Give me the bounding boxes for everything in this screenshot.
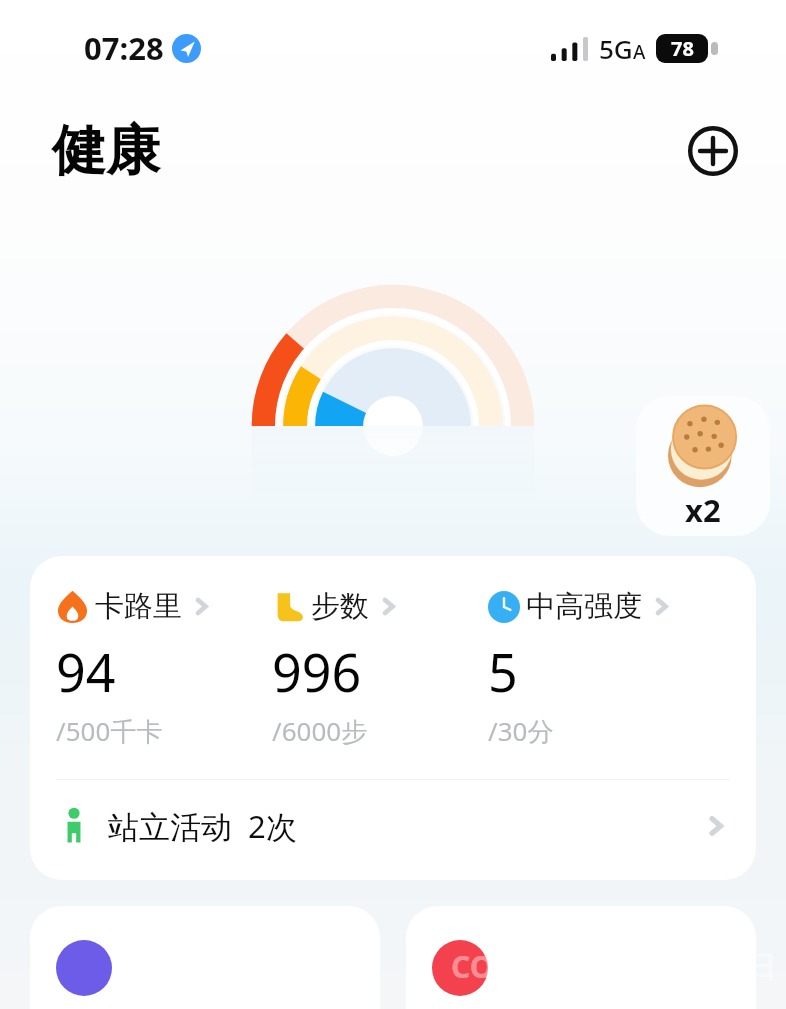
button[interactable]: 中高强度 xyxy=(488,588,730,749)
staticText: A xyxy=(633,39,646,65)
button[interactable]: 步数 xyxy=(272,588,488,749)
staticText: /500千卡 xyxy=(56,713,163,749)
staticText: 卡路里 xyxy=(95,588,182,625)
button[interactable] xyxy=(406,906,756,1009)
staticText: COLG @朱颜辞镜花辞日 xyxy=(450,946,776,987)
staticText: 78 xyxy=(671,35,694,62)
staticText: 5 xyxy=(488,636,518,707)
staticText: 中高强度 xyxy=(526,588,642,625)
staticText: 07:28 xyxy=(84,27,164,69)
button[interactable] xyxy=(30,906,380,1009)
staticText: 步数 xyxy=(311,588,369,625)
staticText: 健康 xyxy=(52,117,160,185)
staticText: 5G xyxy=(599,31,633,66)
button[interactable]: x2 xyxy=(636,396,770,536)
button[interactable]: Add xyxy=(684,122,742,180)
staticText: 94 xyxy=(56,636,116,707)
button[interactable]: 站立活动 2次 xyxy=(56,780,730,872)
staticText: x2 xyxy=(685,489,721,531)
button[interactable]: 卡路里 xyxy=(56,588,272,749)
staticText: 996 xyxy=(272,636,362,707)
staticText: 站立活动 2次 xyxy=(108,805,297,847)
staticText: /30分 xyxy=(488,713,554,749)
staticText: /6000步 xyxy=(272,713,368,749)
